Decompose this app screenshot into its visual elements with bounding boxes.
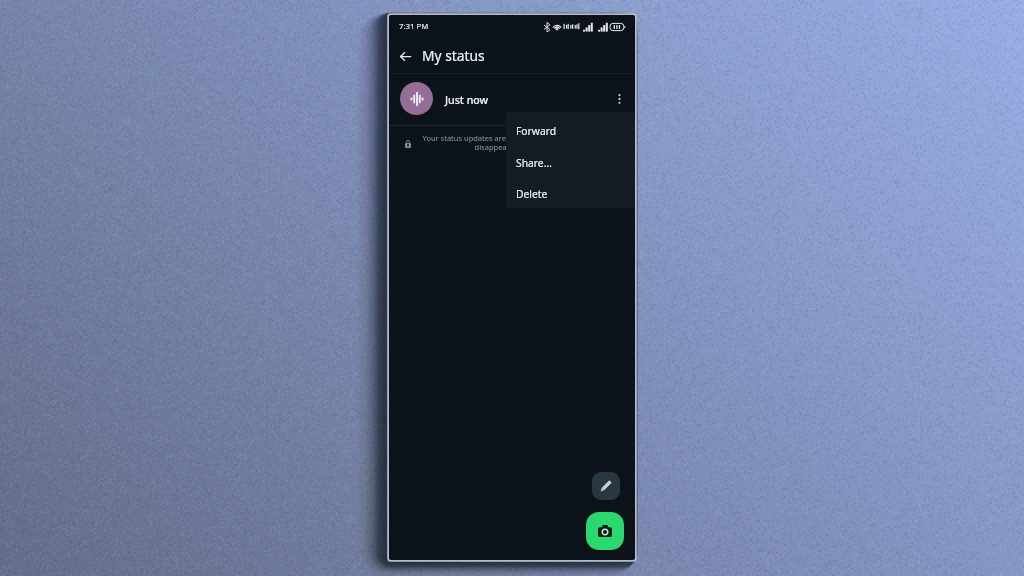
button[interactable]: Camera	[586, 512, 624, 550]
staticText: Forward	[516, 124, 557, 138]
button[interactable]: Forward	[506, 115, 635, 146]
staticText: 7:31 PM	[399, 21, 429, 32]
button[interactable]: Back	[391, 42, 419, 70]
staticText: Share…	[516, 156, 552, 170]
button[interactable]: Delete	[506, 178, 635, 209]
staticText: My status	[422, 46, 485, 65]
staticText: Your status updates are end-to-end encry…	[418, 133, 618, 152]
button[interactable]: Share…	[506, 147, 635, 178]
button[interactable]: More options	[606, 86, 632, 112]
button[interactable]: Write status update	[592, 472, 620, 500]
staticText: Just now	[445, 93, 489, 107]
staticText: Delete	[516, 187, 548, 201]
button[interactable]: Just now	[389, 74, 635, 125]
